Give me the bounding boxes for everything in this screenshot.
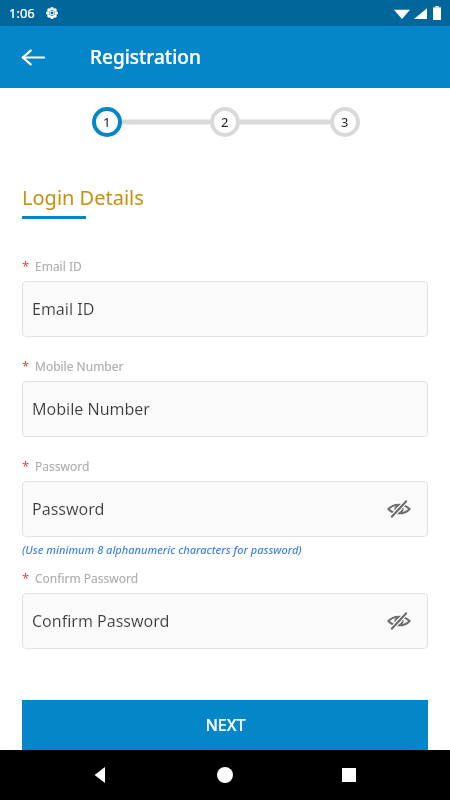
staticText: * bbox=[22, 257, 30, 275]
staticText: * bbox=[22, 357, 30, 375]
staticText: Password bbox=[35, 458, 90, 474]
button[interactable]: Back bbox=[10, 35, 54, 79]
staticText: * bbox=[22, 569, 30, 587]
staticText: Password bbox=[32, 498, 105, 520]
button[interactable]: Password bbox=[22, 481, 428, 537]
staticText: 3 bbox=[341, 113, 349, 131]
staticText: Email ID bbox=[32, 298, 95, 320]
staticText: * bbox=[22, 457, 30, 475]
button[interactable]: Back bbox=[78, 752, 124, 798]
staticText: 2 bbox=[221, 113, 229, 131]
button[interactable]: Toggle password visibility bbox=[382, 604, 416, 638]
button[interactable]: Confirm Password bbox=[22, 593, 428, 649]
staticText: Mobile Number bbox=[35, 358, 124, 374]
staticText: Registration bbox=[90, 44, 201, 70]
button[interactable]: NEXT bbox=[22, 700, 428, 750]
staticText: Login Details bbox=[22, 184, 144, 211]
staticText: Email ID bbox=[35, 258, 82, 274]
button[interactable]: Home bbox=[202, 752, 248, 798]
button[interactable]: Toggle password visibility bbox=[382, 492, 416, 526]
staticText: 1 bbox=[103, 113, 111, 131]
button[interactable]: Email ID bbox=[22, 281, 428, 337]
staticText: 1:06 bbox=[9, 4, 35, 22]
button[interactable]: Recents bbox=[326, 752, 372, 798]
staticText: Confirm Password bbox=[32, 610, 170, 632]
staticText: NEXT bbox=[205, 714, 246, 736]
staticText: (Use minimum 8 alphanumeric characters f… bbox=[22, 542, 302, 557]
button[interactable]: Mobile Number bbox=[22, 381, 428, 437]
staticText: Confirm Password bbox=[35, 570, 139, 586]
staticText: Mobile Number bbox=[32, 398, 150, 420]
